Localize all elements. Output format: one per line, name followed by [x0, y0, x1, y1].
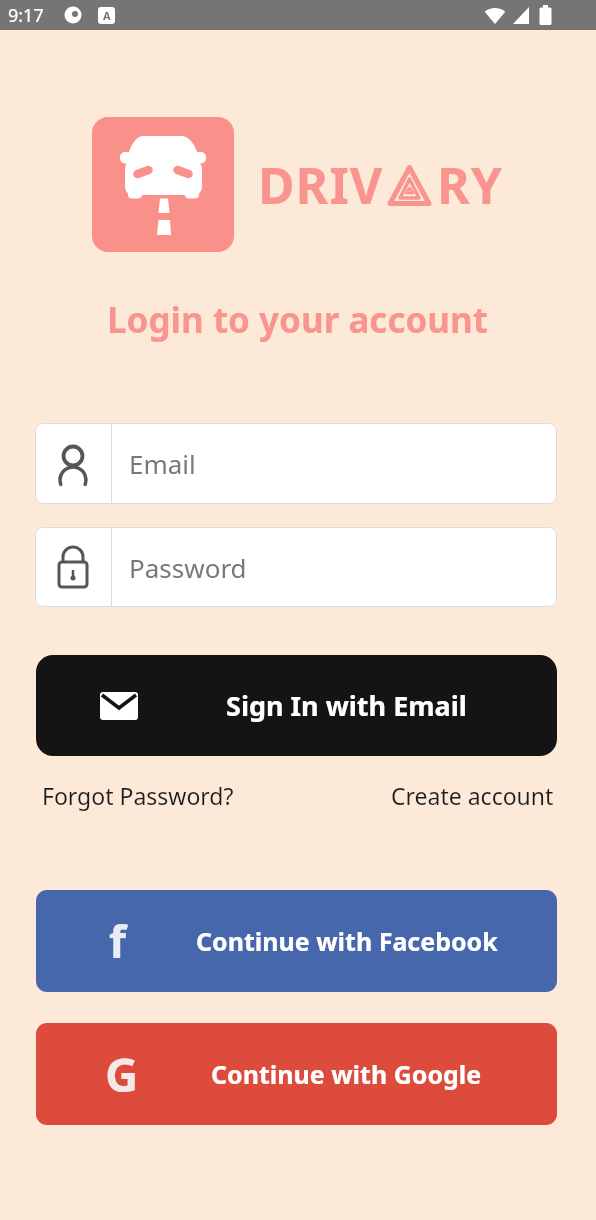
button[interactable]: Password: [35, 527, 557, 607]
button[interactable]: G: [36, 1023, 557, 1125]
staticText: RY: [437, 151, 504, 219]
staticText: Sign In with Email: [226, 687, 467, 724]
staticText: Continue with Facebook: [196, 924, 498, 958]
button[interactable]: Email: [35, 423, 557, 504]
button[interactable]: Create account: [391, 780, 554, 811]
staticText: 9:17: [8, 3, 44, 28]
staticText: Continue with Google: [211, 1057, 482, 1091]
button[interactable]: Sign In with Email: [36, 655, 557, 756]
button[interactable]: Forgot Password?: [42, 780, 234, 811]
staticText: f: [109, 911, 127, 971]
staticText: Email: [129, 446, 196, 481]
staticText: Login to your account: [107, 296, 489, 344]
staticText: G: [105, 1043, 139, 1106]
staticText: Password: [129, 550, 247, 585]
button[interactable]: f: [36, 890, 557, 992]
staticText: A: [103, 8, 111, 23]
staticText: DRIV: [258, 151, 384, 219]
